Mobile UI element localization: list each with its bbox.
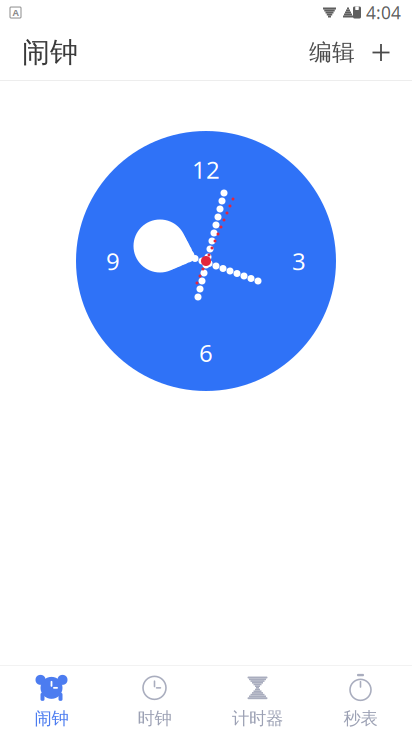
button[interactable]: 计时器	[206, 666, 309, 736]
staticText: 计时器	[232, 708, 283, 729]
staticText: 闹钟	[22, 35, 78, 70]
staticText: 时钟	[137, 708, 171, 729]
button[interactable]: 闹钟	[0, 666, 103, 736]
staticText: A	[12, 6, 18, 19]
staticText: 4:04	[366, 1, 401, 24]
staticText: 秒表	[343, 708, 377, 729]
button[interactable]: Add alarm	[363, 34, 399, 70]
button[interactable]: 时钟	[103, 666, 206, 736]
staticText: 3	[292, 245, 306, 277]
button[interactable]: 编辑	[301, 29, 363, 76]
staticText: 12	[192, 153, 220, 185]
button[interactable]: 秒表	[309, 666, 412, 736]
staticText: 闹钟	[34, 708, 68, 729]
staticText: 6	[199, 337, 213, 368]
staticText: 编辑	[309, 39, 355, 66]
staticText: 9	[106, 245, 120, 277]
